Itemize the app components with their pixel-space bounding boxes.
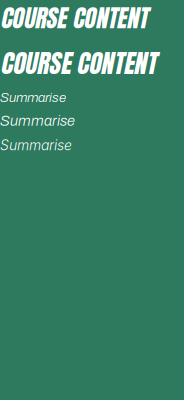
staticText: COURSE CONTENT [0, 0, 147, 36]
staticText: Summarise [0, 137, 72, 154]
staticText: Summarise [0, 113, 75, 129]
staticText: Summarise [0, 90, 66, 105]
staticText: COURSE CONTENT [0, 44, 156, 82]
